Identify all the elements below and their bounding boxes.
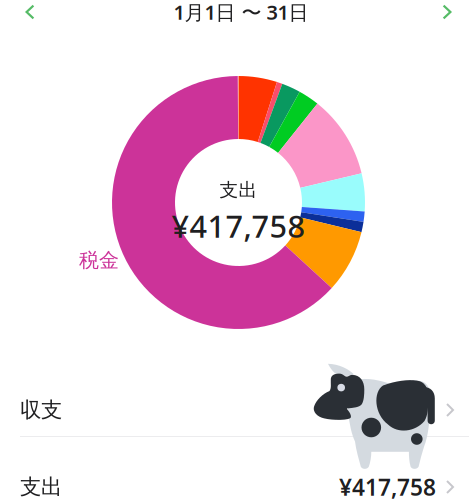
staticText: 収支 — [20, 397, 62, 423]
staticText: 1月1日 〜 31日 — [173, 0, 308, 25]
button[interactable]: 支出 — [0, 461, 469, 500]
staticText: 支出 — [20, 474, 62, 500]
staticText: 税金 — [79, 248, 119, 273]
staticText: ¥417,758 — [171, 206, 305, 246]
button[interactable]: Previous period — [8, 0, 52, 29]
button[interactable]: 収支 — [0, 384, 469, 436]
staticText: ¥417,758 — [339, 472, 436, 500]
button[interactable]: Next period — [425, 0, 469, 29]
staticText: 支出 — [219, 179, 257, 202]
